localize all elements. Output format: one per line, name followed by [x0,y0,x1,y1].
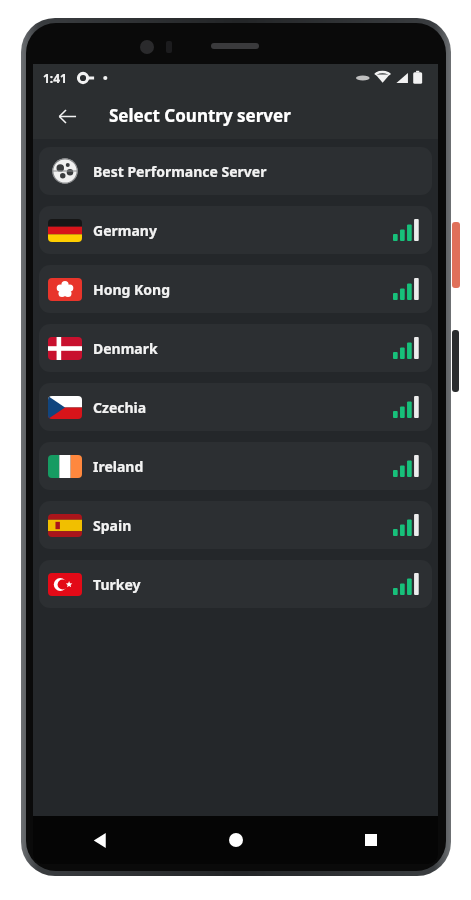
staticText: Spain [93,516,132,535]
button[interactable]: Turkey [39,560,432,608]
staticText: Select Country server [109,104,291,127]
staticText: Hong Kong [93,280,171,299]
staticText: 1:41 [43,70,67,86]
staticText: Turkey [93,575,141,594]
staticText: Czechia [93,398,147,417]
button[interactable]: Denmark [39,324,432,372]
staticText: Germany [93,221,157,240]
button[interactable]: Back [49,98,85,134]
button[interactable]: Back [33,816,168,864]
button[interactable]: Hong Kong [39,265,432,313]
staticText: Ireland [93,457,144,476]
staticText: Best Performance Server [93,162,267,181]
button[interactable]: Home [168,816,303,864]
button[interactable]: Best Performance Server [39,147,432,195]
button[interactable]: Czechia [39,383,432,431]
button[interactable]: Spain [39,501,432,549]
button[interactable]: Germany [39,206,432,254]
button[interactable]: Ireland [39,442,432,490]
staticText: Denmark [93,339,158,358]
button[interactable]: Recent apps [303,816,438,864]
